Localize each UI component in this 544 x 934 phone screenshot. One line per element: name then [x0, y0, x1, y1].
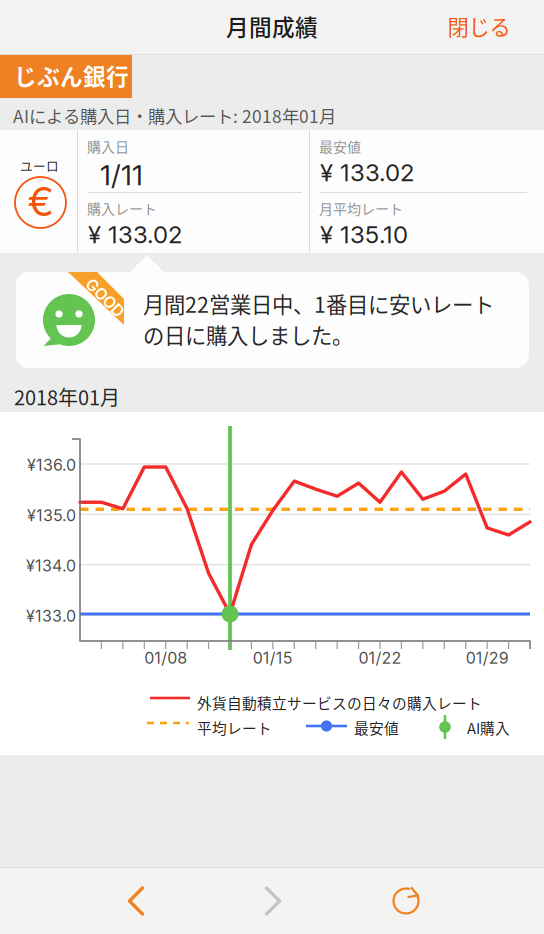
staticText: ¥ 135.10	[320, 220, 408, 249]
staticText: AIによる購入日・購入レート: 2018年01月	[13, 103, 336, 128]
button[interactable]: 次の月	[243, 868, 303, 934]
staticText: 月平均レート	[319, 198, 403, 218]
staticText: 購入レート	[87, 198, 157, 218]
staticText: 01/08	[144, 648, 187, 668]
staticText: AI購入	[467, 717, 510, 738]
staticText: 外貨自動積立サービスの日々の購入レート	[197, 692, 482, 713]
staticText: 01/22	[358, 648, 401, 668]
staticText: 01/15	[253, 648, 293, 668]
staticText: ユーロ	[20, 156, 59, 174]
staticText: ¥134.0	[26, 556, 76, 575]
staticText: 最安値	[354, 717, 399, 738]
button[interactable]: 前の月	[106, 868, 166, 934]
staticText: 月間22営業日中、1番目に安いレート の日に購入しました。	[143, 288, 494, 350]
button[interactable]: 更新	[377, 868, 437, 934]
staticText: ¥135.0	[27, 506, 76, 525]
staticText: ¥133.0	[26, 606, 76, 626]
staticText: じぶん銀行	[14, 59, 129, 92]
staticText: ¥136.0	[27, 455, 76, 475]
staticText: 2018年01月	[14, 382, 120, 411]
staticText: 閉じる	[447, 11, 510, 41]
button[interactable]: 月間成績	[192, 0, 352, 54]
staticText: ¥ 133.02	[88, 220, 182, 249]
staticText: 1/11	[100, 158, 143, 192]
staticText: 購入日	[87, 136, 129, 156]
staticText: €	[28, 177, 53, 226]
staticText: 月間成績	[226, 10, 318, 42]
button[interactable]: 閉じる	[424, 0, 530, 54]
staticText: GOOD	[81, 288, 129, 308]
staticText: 平均レート	[197, 717, 272, 738]
staticText: 最安値	[319, 136, 361, 156]
staticText: 01/29	[466, 648, 509, 668]
staticText: ¥ 133.02	[320, 158, 414, 187]
